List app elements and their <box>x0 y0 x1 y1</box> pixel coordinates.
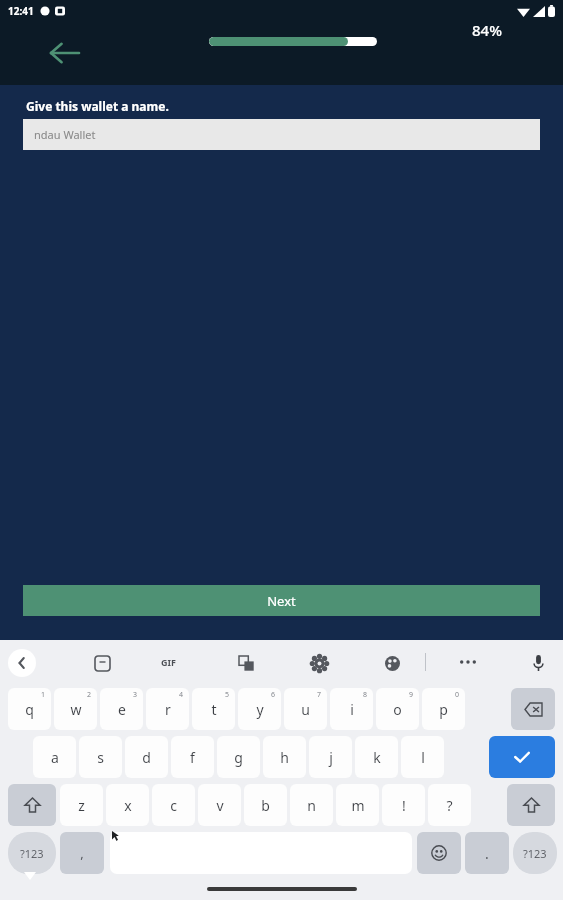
button[interactable]: More options <box>452 652 484 672</box>
staticText: GIF <box>161 656 176 668</box>
staticText: 8 <box>363 690 368 700</box>
button[interactable]: Shift <box>8 784 56 826</box>
staticText: i <box>350 700 354 719</box>
staticText: z <box>78 796 85 815</box>
staticText: ndau Wallet <box>34 127 96 142</box>
button[interactable]: e <box>100 688 143 730</box>
button[interactable]: p <box>422 688 465 730</box>
button[interactable]: w <box>54 688 97 730</box>
button[interactable]: Next <box>23 585 540 616</box>
staticText: o <box>393 700 402 719</box>
staticText: x <box>124 796 132 815</box>
staticText: b <box>261 796 270 815</box>
staticText: ?123 <box>20 846 44 861</box>
staticText: 7 <box>317 690 322 700</box>
staticText: q <box>25 700 34 719</box>
staticText: e <box>118 700 126 719</box>
button[interactable]: l <box>401 736 444 778</box>
staticText: 4 <box>179 690 184 700</box>
staticText: l <box>421 748 425 767</box>
button[interactable]: x <box>106 784 149 826</box>
button[interactable]: k <box>355 736 398 778</box>
staticText: v <box>216 796 224 815</box>
button[interactable]: ! <box>382 784 425 826</box>
staticText: ? <box>446 796 453 815</box>
button[interactable]: Backspace <box>511 688 555 730</box>
button[interactable]: Keyboard tool <box>88 649 116 677</box>
button[interactable]: Voice input <box>526 651 550 675</box>
button[interactable]: u <box>284 688 327 730</box>
staticText: c <box>170 796 177 815</box>
staticText: n <box>307 796 316 815</box>
staticText: y <box>256 700 264 719</box>
button[interactable]: s <box>79 736 122 778</box>
staticText: 9 <box>409 690 414 700</box>
button[interactable]: j <box>309 736 352 778</box>
staticText: p <box>439 700 448 719</box>
button[interactable]: Close keyboard toolbar <box>8 649 36 677</box>
button[interactable]: m <box>336 784 379 826</box>
button[interactable]: , <box>60 832 104 874</box>
button[interactable]: Back <box>40 36 88 70</box>
button[interactable]: a <box>33 736 76 778</box>
button[interactable]: Shift <box>507 784 555 826</box>
staticText: Give this wallet a name. <box>26 98 169 114</box>
button[interactable]: y <box>238 688 281 730</box>
button[interactable]: Keyboard tool <box>232 649 260 677</box>
button[interactable]: n <box>290 784 333 826</box>
staticText: 5 <box>225 690 230 700</box>
button[interactable]: z <box>60 784 103 826</box>
button[interactable]: ? <box>428 784 471 826</box>
button[interactable]: Keyboard tool <box>305 649 333 677</box>
staticText: f <box>190 748 195 767</box>
staticText: u <box>301 700 310 719</box>
button[interactable]: b <box>244 784 287 826</box>
staticText: . <box>485 844 489 863</box>
button[interactable]: t <box>192 688 235 730</box>
staticText: g <box>234 748 243 767</box>
staticText: 12:41 <box>8 4 34 18</box>
button[interactable]: f <box>171 736 214 778</box>
button[interactable]: ?123 <box>8 832 56 874</box>
button[interactable]: r <box>146 688 189 730</box>
button[interactable]: d <box>125 736 168 778</box>
staticText: 0 <box>455 690 460 700</box>
staticText: , <box>80 844 84 862</box>
button[interactable]: . <box>465 832 509 874</box>
staticText: Next <box>267 592 296 610</box>
button[interactable]: q <box>8 688 51 730</box>
button[interactable]: c <box>152 784 195 826</box>
staticText: 2 <box>87 690 92 700</box>
button[interactable]: Space <box>110 832 412 874</box>
button[interactable]: ndau Wallet <box>23 119 540 150</box>
staticText: t <box>211 700 217 719</box>
staticText: a <box>51 748 59 767</box>
staticText: m <box>351 796 365 815</box>
button[interactable]: o <box>376 688 419 730</box>
button[interactable]: v <box>198 784 241 826</box>
button[interactable]: ?123 <box>513 832 557 874</box>
staticText: 6 <box>271 690 276 700</box>
staticText: 1 <box>41 690 46 700</box>
staticText: w <box>70 700 82 719</box>
button[interactable]: g <box>217 736 260 778</box>
button[interactable]: i <box>330 688 373 730</box>
button[interactable]: Keyboard tool <box>378 649 406 677</box>
button[interactable]: Enter <box>489 736 555 778</box>
staticText: r <box>165 700 171 719</box>
staticText: ! <box>402 796 406 815</box>
button[interactable]: GIF <box>152 652 184 672</box>
staticText: j <box>329 748 333 767</box>
staticText: 3 <box>133 690 138 700</box>
staticText: h <box>280 748 289 767</box>
staticText: k <box>373 748 381 767</box>
staticText: s <box>97 748 104 767</box>
button[interactable]: Emoji <box>417 832 461 874</box>
staticText: 84% <box>472 20 502 40</box>
staticText: d <box>142 748 151 767</box>
button[interactable]: h <box>263 736 306 778</box>
staticText: ?123 <box>523 846 547 861</box>
